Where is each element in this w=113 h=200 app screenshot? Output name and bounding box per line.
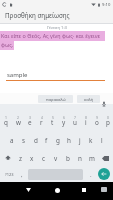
staticText: 9:10 [102, 2, 111, 8]
button[interactable]: sample [6, 68, 106, 82]
button[interactable]: 8 [80, 113, 91, 131]
button[interactable]: παρακαλώ [38, 95, 73, 103]
staticText: o [95, 118, 99, 127]
staticText: 2 [17, 115, 19, 120]
button[interactable]: s [18, 131, 30, 149]
staticText: b [66, 154, 70, 163]
staticText: l [101, 136, 103, 145]
button[interactable]: z [15, 149, 26, 167]
button[interactable]: 7 [69, 113, 80, 131]
staticText: j [79, 136, 81, 145]
staticText: s [22, 136, 26, 145]
button[interactable]: 4 [36, 113, 47, 131]
staticText: m [89, 154, 95, 163]
staticText: i [85, 118, 87, 127]
button[interactable]: l [96, 131, 107, 149]
button[interactable]: n [74, 149, 86, 167]
button[interactable]: b [62, 149, 74, 167]
button[interactable]: x [26, 149, 38, 167]
staticText: h [67, 136, 71, 145]
button[interactable]: v [50, 149, 62, 167]
button[interactable]: καλή [77, 95, 100, 103]
button[interactable]: Backspace [98, 149, 113, 167]
staticText: 8 [85, 115, 87, 120]
button[interactable]: c [38, 149, 50, 167]
staticText: k [89, 136, 93, 145]
staticText: f [45, 136, 48, 145]
staticText: t [51, 118, 54, 127]
button[interactable]: 1 [0, 113, 12, 131]
staticText: καλή [84, 97, 94, 102]
button[interactable]: f [41, 131, 52, 149]
button[interactable]: Shift [0, 149, 15, 167]
button[interactable]: d [30, 131, 41, 149]
staticText: a [10, 136, 14, 145]
staticText: sample [7, 71, 28, 79]
staticText: . [90, 171, 92, 179]
staticText: n [78, 154, 82, 163]
staticText: d [34, 136, 38, 145]
staticText: παρακαλώ [46, 97, 66, 102]
staticText: y [62, 118, 66, 127]
button[interactable]: Home [51, 184, 63, 196]
button[interactable]: 2 [12, 113, 24, 131]
staticText: ?123 [5, 172, 14, 177]
button[interactable]: h [63, 131, 74, 149]
staticText: Και είπε ο Θεός, Ας γίνη φως· και έγεινε… [1, 32, 113, 49]
button[interactable]: k [85, 131, 96, 149]
button[interactable]: Switch keyboard [99, 185, 108, 194]
button[interactable]: Voice input [100, 100, 108, 108]
staticText: Προσθήκη σημείωσης [5, 11, 70, 20]
staticText: 6 [63, 115, 65, 120]
staticText: e [28, 118, 32, 127]
button[interactable]: a [6, 131, 18, 149]
staticText: r [40, 118, 43, 127]
button[interactable]: Enter [98, 168, 110, 180]
button[interactable]: 3 [24, 113, 36, 131]
button[interactable]: g [52, 131, 63, 149]
staticText: p [106, 118, 110, 127]
staticText: 7 [74, 115, 76, 120]
staticText: Γένεση 1:3 [47, 25, 67, 31]
button[interactable]: , [17, 167, 27, 182]
staticText: 3 [29, 115, 31, 120]
button[interactable]: m [86, 149, 98, 167]
staticText: c [42, 154, 46, 163]
staticText: x [30, 154, 34, 163]
staticText: 0 [107, 115, 109, 120]
button[interactable]: . [86, 167, 96, 182]
staticText: q [4, 118, 8, 127]
button[interactable]: 5 [47, 113, 58, 131]
staticText: z [19, 154, 22, 163]
button[interactable]: Recents [78, 184, 90, 196]
staticText: v [54, 154, 58, 163]
button[interactable]: ?123 [2, 167, 16, 182]
staticText: g [56, 136, 60, 145]
button[interactable]: 6 [58, 113, 69, 131]
staticText: 4 [41, 115, 43, 120]
staticText: 9 [96, 115, 98, 120]
staticText: w [16, 118, 21, 127]
staticText: , [21, 171, 23, 179]
staticText: 1 [5, 115, 7, 120]
button[interactable]: Back [22, 184, 34, 196]
button[interactable]: 9 [91, 113, 102, 131]
button[interactable]: j [74, 131, 85, 149]
button[interactable]: 0 [102, 113, 113, 131]
staticText: u [73, 118, 77, 127]
staticText: 5 [52, 115, 54, 120]
